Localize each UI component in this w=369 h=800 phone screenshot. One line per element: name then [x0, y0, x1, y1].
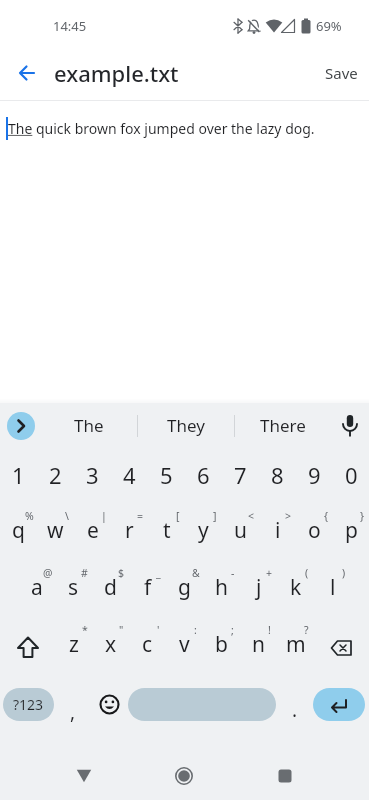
button[interactable]: ) — [314, 562, 351, 619]
staticText: a — [31, 573, 43, 602]
staticText: p — [345, 516, 358, 545]
staticText: $ — [118, 566, 125, 580]
button[interactable] — [128, 688, 276, 721]
staticText: \ — [65, 509, 69, 523]
button[interactable]: 6 — [185, 448, 222, 505]
button[interactable]: 8 — [259, 448, 296, 505]
staticText: & — [192, 566, 200, 580]
button[interactable]: % — [0, 505, 37, 562]
staticText: u — [234, 516, 247, 545]
staticText: 5 — [160, 460, 173, 490]
staticText: | — [101, 509, 107, 523]
staticText: Save — [325, 63, 358, 83]
staticText: l — [330, 573, 336, 602]
button[interactable]: 7 — [222, 448, 259, 505]
button[interactable]: * — [55, 619, 92, 676]
button[interactable]: } — [333, 505, 369, 562]
button[interactable] — [166, 752, 202, 800]
staticText: c — [142, 630, 153, 659]
staticText: g — [178, 573, 191, 602]
button[interactable]: 4 — [111, 448, 148, 505]
button[interactable]: 5 — [148, 448, 185, 505]
staticText: n — [252, 630, 265, 659]
button[interactable]: There — [235, 403, 331, 448]
button[interactable]: ' — [129, 619, 166, 676]
button[interactable]: | — [74, 505, 111, 562]
button[interactable]: 1 — [0, 448, 37, 505]
button[interactable]: \ — [37, 505, 74, 562]
staticText: They — [167, 414, 205, 437]
button[interactable] — [0, 45, 54, 100]
staticText: v — [179, 630, 190, 659]
staticText: % — [25, 509, 34, 523]
staticText: f — [144, 573, 152, 602]
button[interactable] — [91, 676, 128, 733]
staticText: example.txt — [54, 58, 179, 88]
button[interactable]: 9 — [296, 448, 333, 505]
staticText: 8 — [271, 460, 284, 490]
button[interactable]: Save — [325, 45, 369, 100]
button[interactable] — [66, 752, 102, 800]
staticText: 7 — [234, 460, 247, 490]
button[interactable]: The — [41, 403, 137, 448]
button[interactable]: < — [222, 505, 259, 562]
button[interactable]: ] — [185, 505, 222, 562]
button[interactable]: 0 — [333, 448, 369, 505]
button[interactable]: & — [166, 562, 203, 619]
button[interactable]: ; — [203, 619, 240, 676]
button[interactable]: . — [276, 676, 313, 733]
staticText: o — [308, 516, 321, 545]
staticText: } — [360, 509, 364, 523]
staticText: e — [87, 516, 99, 545]
button[interactable] — [314, 619, 369, 676]
button[interactable] — [331, 403, 369, 448]
button[interactable]: " — [92, 619, 129, 676]
staticText: @ — [43, 566, 53, 580]
button[interactable]: 2 — [37, 448, 74, 505]
staticText: ] — [213, 509, 217, 523]
staticText: 4 — [123, 460, 136, 490]
staticText: ?123 — [13, 695, 44, 714]
staticText: ( — [305, 566, 309, 580]
button[interactable]: = — [111, 505, 148, 562]
button[interactable]: : — [166, 619, 203, 676]
button[interactable]: ?123 — [3, 688, 54, 721]
staticText: k — [290, 573, 302, 602]
button[interactable]: $ — [92, 562, 129, 619]
staticText: # — [81, 566, 88, 580]
staticText: = — [137, 509, 144, 523]
button[interactable]: # — [55, 562, 92, 619]
button[interactable] — [267, 752, 303, 800]
staticText: y — [198, 516, 209, 545]
button[interactable] — [7, 412, 35, 440]
button[interactable]: - — [203, 562, 240, 619]
button[interactable] — [313, 688, 365, 721]
staticText: + — [266, 566, 273, 580]
staticText: w — [47, 516, 64, 545]
button[interactable]: _ — [129, 562, 166, 619]
button[interactable]: > — [259, 505, 296, 562]
staticText: j — [256, 573, 262, 602]
staticText: 69% — [316, 17, 342, 35]
staticText: 14:45 — [53, 17, 87, 35]
staticText: b — [215, 630, 228, 659]
button[interactable]: ? — [277, 619, 314, 676]
staticText: ; — [231, 623, 234, 637]
button[interactable]: @ — [18, 562, 55, 619]
button[interactable]: { — [296, 505, 333, 562]
staticText: - — [231, 566, 235, 580]
staticText: ? — [304, 623, 309, 637]
button[interactable]: + — [240, 562, 277, 619]
button[interactable] — [0, 619, 55, 676]
button[interactable]: [ — [148, 505, 185, 562]
staticText: 0 — [345, 460, 358, 490]
button[interactable]: 3 — [74, 448, 111, 505]
button[interactable]: ( — [277, 562, 314, 619]
staticText: 9 — [308, 460, 321, 490]
button[interactable]: They — [138, 403, 234, 448]
staticText: : — [194, 623, 197, 637]
button[interactable]: , — [54, 676, 91, 733]
button[interactable]: ! — [240, 619, 277, 676]
staticText: 3 — [86, 460, 99, 490]
staticText: [ — [176, 509, 180, 523]
